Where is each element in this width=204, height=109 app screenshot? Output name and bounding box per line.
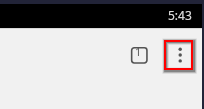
staticText: 5:43 — [168, 7, 192, 23]
staticText: 1 — [135, 44, 142, 59]
button[interactable]: More options — [158, 34, 198, 74]
button[interactable]: Tabs, 1 open — [124, 41, 154, 71]
